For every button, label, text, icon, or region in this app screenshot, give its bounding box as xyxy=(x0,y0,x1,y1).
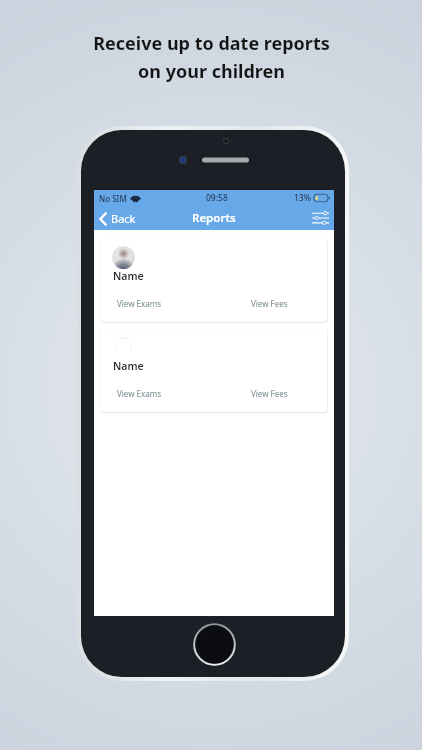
staticText: 09:58 xyxy=(206,192,228,204)
button[interactable]: View Fees xyxy=(248,386,291,401)
staticText: View Exams xyxy=(117,388,162,399)
button[interactable]: View Fees xyxy=(248,296,291,311)
staticText: Back xyxy=(111,211,136,226)
staticText: No SIM xyxy=(99,193,127,204)
staticText: View Fees xyxy=(251,298,288,309)
staticText: View Exams xyxy=(117,298,162,309)
button[interactable]: Name xyxy=(101,239,327,322)
staticText: Reports xyxy=(192,210,236,226)
staticText: Receive up to date reports xyxy=(93,31,330,56)
button[interactable]: Filter settings xyxy=(304,208,334,228)
staticText: View Fees xyxy=(251,388,288,399)
staticText: Name xyxy=(113,359,144,373)
button[interactable]: View Exams xyxy=(114,386,165,401)
button[interactable]: View Exams xyxy=(114,296,165,311)
button[interactable]: Back xyxy=(94,207,144,230)
button[interactable]: Name xyxy=(101,329,327,412)
staticText: 13% xyxy=(294,192,311,204)
staticText: on your children xyxy=(138,59,285,84)
staticText: Name xyxy=(113,269,144,283)
